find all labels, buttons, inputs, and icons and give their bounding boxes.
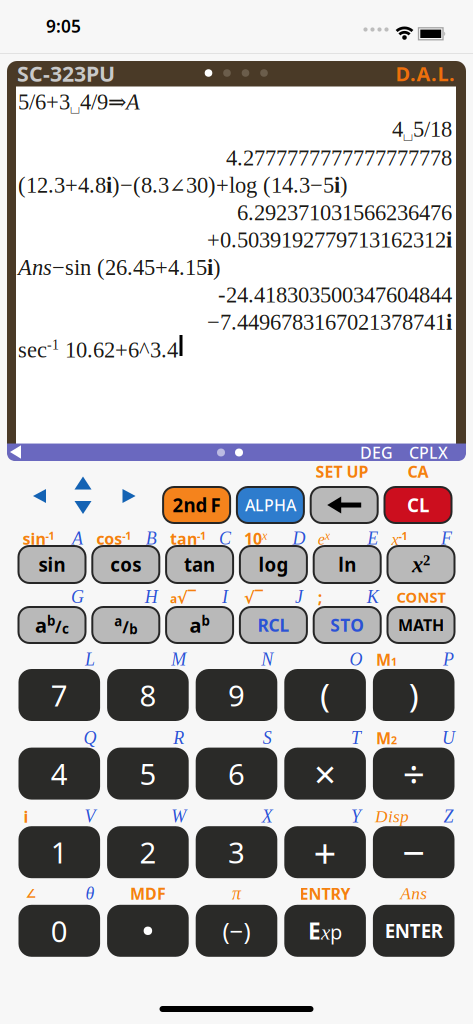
button[interactable]: 2nd F [163,487,230,523]
staticText: ALPHA [245,494,296,516]
button[interactable] [107,905,189,957]
button[interactable]: 1 [18,826,100,878]
staticText: D.A.L. [395,60,455,87]
staticText: B [146,528,157,548]
staticText: (−) [222,915,250,947]
staticText: 0 [51,911,68,950]
staticText: ex [318,529,330,548]
staticText: CONST [396,587,445,607]
button[interactable] [0,0,473,1024]
button[interactable] [311,487,378,523]
staticText: N [261,649,273,669]
staticText: i [23,806,28,827]
staticText: 5 [139,754,156,793]
staticText: π [232,883,241,903]
staticText: G [71,587,84,607]
staticText: + [314,826,337,879]
button[interactable] [0,0,473,1024]
button[interactable]: (−) [196,905,277,957]
staticText: D [292,528,305,548]
staticText: Ans−sin (26.45+4.15i) [18,255,221,279]
button[interactable]: 2 [107,826,189,878]
button[interactable] [0,0,473,1024]
button[interactable]: CL [384,487,451,523]
button[interactable]: 4 [18,748,100,800]
staticText: P [443,649,454,669]
staticText: × [314,748,336,799]
staticText: 7 [51,675,68,714]
staticText: J [295,587,303,607]
staticText: (12.3+4.8i)−(8.3∠30)+log (14.3−5i) [18,173,348,197]
staticText: K [367,587,379,607]
staticText: − [402,826,425,879]
staticText: 3 [228,833,245,872]
staticText: 5/6+3␣4/9⇒A [18,89,140,117]
staticText: E [367,528,378,548]
button[interactable] [0,0,473,1024]
staticText: DEG [360,442,393,463]
button[interactable]: ENTER [373,905,454,957]
staticText: a/b [114,612,137,638]
button[interactable] [0,0,473,1024]
staticText: 9 [228,675,245,714]
staticText: M1 [376,649,397,670]
button[interactable]: + [284,826,366,878]
staticText: CPLX [409,442,448,463]
button[interactable]: Exp [284,905,366,957]
staticText: SET UP [315,461,368,482]
button[interactable]: ab [166,607,233,643]
button[interactable]: ln [314,546,381,583]
staticText: Disp [375,807,409,826]
button[interactable]: ( [284,669,366,721]
button[interactable]: MATH [387,607,454,643]
staticText: S [263,728,272,748]
staticText: Q [84,728,97,748]
button[interactable]: ) [373,669,454,721]
staticText: C [219,528,231,548]
button[interactable]: ab/c [18,607,85,643]
button[interactable]: 7 [18,669,100,721]
staticText: Exp [308,916,342,946]
button[interactable]: 5 [107,748,189,800]
staticText: L [85,649,95,669]
staticText: 4␣5/18 [392,117,452,144]
button[interactable]: STO [314,607,381,643]
staticText: sec-1 10.62+6^3.4 [18,337,178,362]
staticText: Y [351,806,361,826]
staticText: 4 [51,754,68,793]
button[interactable]: − [373,826,454,878]
staticText: sin [38,552,65,577]
button[interactable]: 8 [107,669,189,721]
button[interactable]: sin [18,546,85,583]
button[interactable]: ALPHA [237,487,304,523]
button[interactable]: × [284,748,366,800]
staticText: M2 [376,727,397,749]
button[interactable]: x2 [387,546,454,583]
staticText: ab [190,612,210,638]
staticText: ( [320,673,330,717]
button[interactable]: 9 [196,669,277,721]
button[interactable]: 0 [18,905,100,957]
button[interactable]: 3 [196,826,277,878]
button[interactable]: ÷ [373,748,454,800]
staticText: Ans [400,884,427,903]
button[interactable]: a/b [92,607,159,643]
button[interactable]: RCL [240,607,307,643]
staticText: +0.5039192779713162312i [207,228,452,252]
staticText: 10x [244,528,267,549]
button[interactable]: cos [92,546,159,583]
staticText: ÷ [403,748,425,799]
button[interactable]: 6 [196,748,277,800]
staticText: -24.418303500347604844 [218,282,452,307]
staticText: ∠ [25,887,36,900]
staticText: tan-1 [170,528,206,549]
staticText: ln [338,552,356,577]
staticText: ; [318,586,323,608]
button[interactable]: log [240,546,307,583]
button[interactable]: tan [166,546,233,583]
staticText: a√‾ [170,586,196,608]
staticText: W [171,806,186,826]
staticText: ab/c [35,612,69,638]
staticText: 4.2777777777777777778 [226,145,452,170]
staticText: MATH [398,614,444,636]
